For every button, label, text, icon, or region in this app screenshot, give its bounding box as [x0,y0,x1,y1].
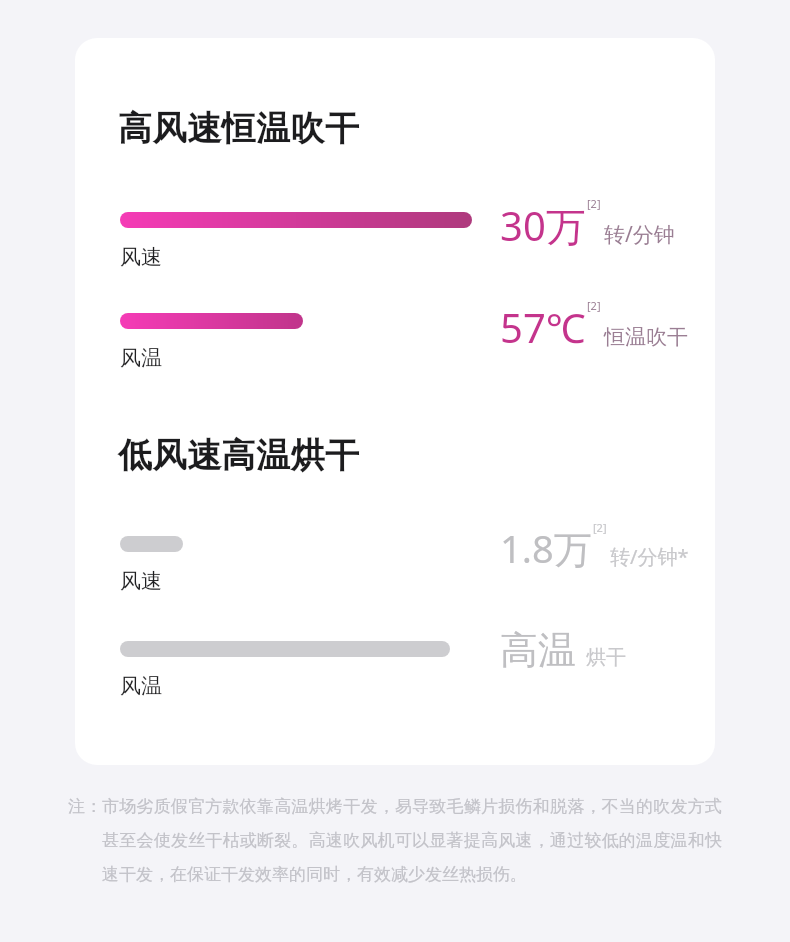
staticText: 高风速恒温吹干 [118,107,360,150]
staticText: 恒温吹干 [604,324,688,350]
staticText: 转/分钟* [610,543,689,570]
button[interactable]: 高温烘干 [500,626,626,674]
staticText: 市场劣质假官方款依靠高温烘烤干发，易导致毛鳞片损伤和脱落，不当的吹发方式甚至会使… [102,796,722,885]
staticText: 低风速高温烘干 [118,434,360,477]
staticText: 风速 [120,568,162,594]
button[interactable]: 高风速转速 30万转每分钟 [500,198,675,253]
staticText: 风速 [120,244,162,270]
staticText: 转/分钟 [604,220,675,249]
staticText: [2] [587,298,601,313]
staticText: 57℃ [500,300,586,354]
staticText: 1.8万 [500,522,592,574]
staticText: 烘干 [586,645,626,670]
staticText: 风温 [120,345,162,371]
staticText: 30万 [500,198,586,253]
staticText: [2] [593,520,607,535]
staticText: 高温 [500,626,576,674]
staticText: [2] [587,196,601,211]
staticText: 风温 [120,673,162,699]
staticText: 注： [68,796,102,817]
button[interactable]: 低风速转速 1.8万转每分钟 [500,522,689,574]
button[interactable]: 注： [68,796,722,885]
button[interactable]: 恒温吹干 57摄氏度 [500,300,688,354]
